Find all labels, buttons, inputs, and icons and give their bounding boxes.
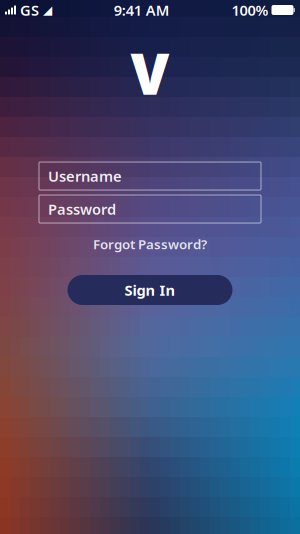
staticText: 9:41 AM: [114, 0, 170, 20]
staticText: Password: [48, 199, 116, 219]
staticText: Sign In: [124, 280, 175, 300]
button[interactable]: Username: [39, 162, 261, 190]
button[interactable]: Password: [39, 195, 261, 223]
staticText: 100%: [231, 0, 268, 20]
staticText: GS: [20, 0, 39, 20]
button[interactable]: Forgot Password?: [39, 236, 261, 252]
staticText: ◢: [43, 3, 52, 17]
button[interactable]: Sign In: [67, 275, 232, 305]
staticText: Forgot Password?: [93, 235, 207, 253]
staticText: V: [130, 36, 169, 110]
staticText: Username: [48, 166, 122, 186]
